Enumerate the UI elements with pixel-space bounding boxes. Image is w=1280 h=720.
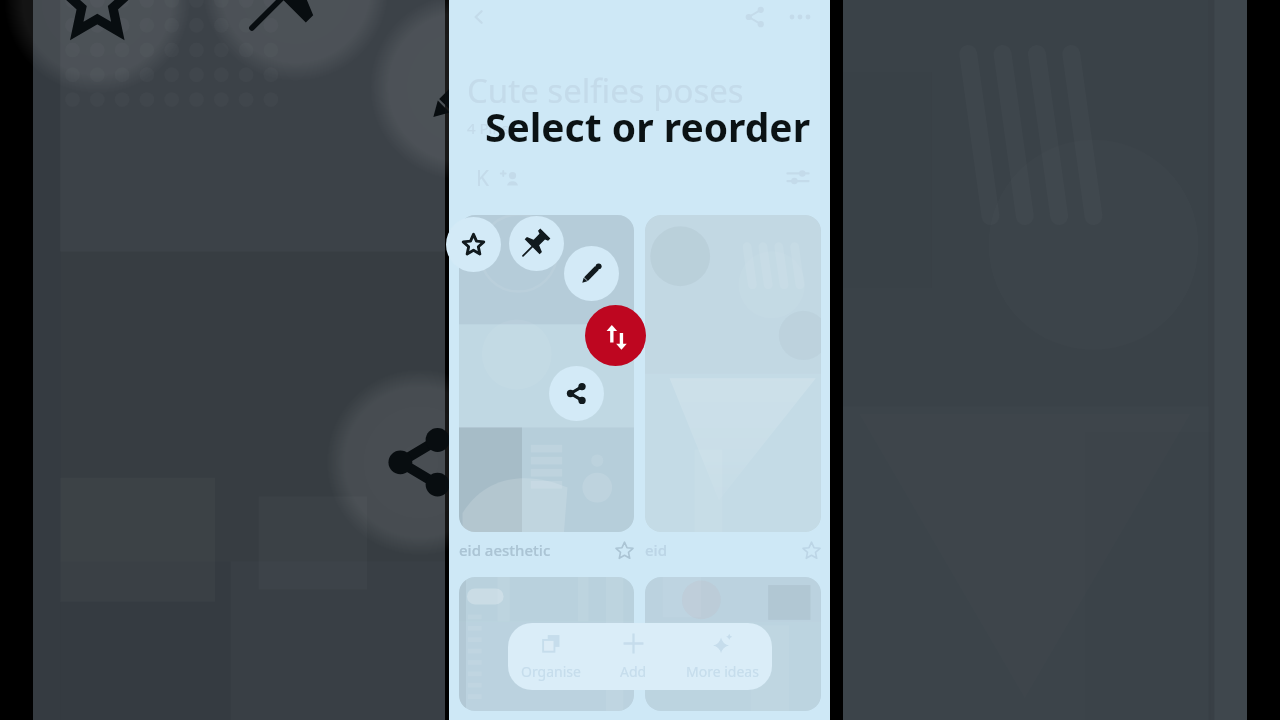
button[interactable]: Organise — [512, 628, 590, 686]
button[interactable]: Invite collaborators — [500, 168, 519, 187]
button[interactable]: Sort and filter — [786, 165, 810, 189]
staticText: Add — [620, 662, 647, 681]
staticText: Organise — [521, 662, 581, 681]
staticText: Select or reorder — [457, 100, 838, 153]
button[interactable]: eid aesthetic — [459, 215, 634, 561]
button[interactable]: More ideas — [677, 628, 768, 686]
button[interactable]: eid — [645, 215, 821, 561]
button[interactable] — [459, 577, 634, 711]
button[interactable]: Reorder pins — [585, 305, 646, 366]
button[interactable]: Add — [611, 628, 656, 686]
button[interactable] — [645, 577, 821, 711]
button[interactable]: Pin — [509, 216, 564, 271]
button[interactable]: More options — [788, 5, 812, 29]
button[interactable]: Favourite — [446, 217, 501, 272]
staticText: More ideas — [686, 662, 759, 681]
staticText: 4 Pins — [467, 118, 509, 138]
staticText: eid aesthetic — [459, 540, 551, 560]
button[interactable]: Share — [549, 366, 604, 421]
staticText: K — [476, 164, 489, 190]
staticText: eid — [645, 540, 667, 560]
button[interactable]: Edit — [564, 246, 619, 301]
staticText: Cute selfies poses — [467, 68, 744, 113]
button[interactable]: Share — [743, 5, 767, 29]
